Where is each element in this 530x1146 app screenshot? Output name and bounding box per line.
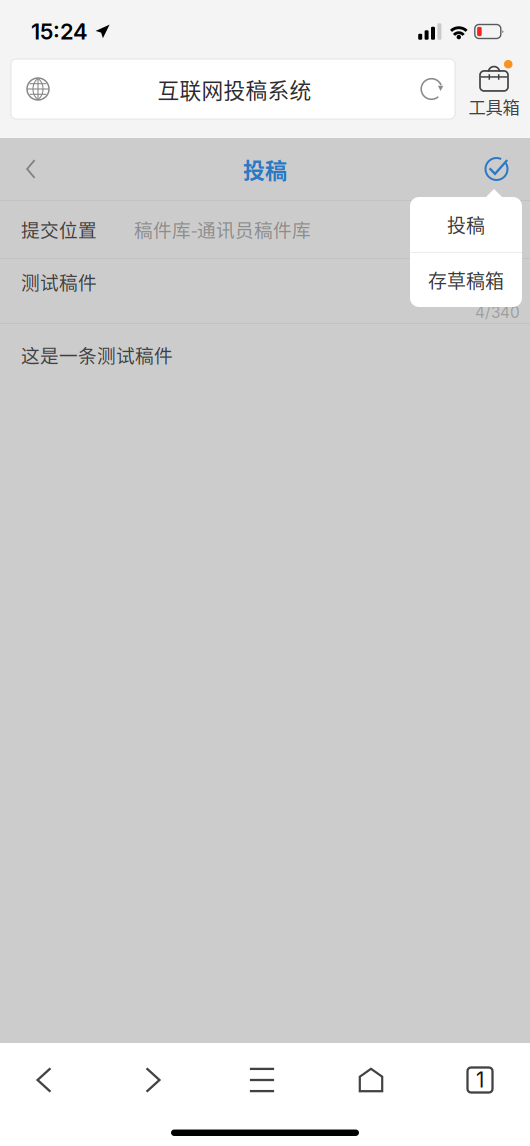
staticText: 投稿 — [243, 153, 287, 185]
staticText: 15:24 — [31, 18, 88, 45]
staticText: 互联网投稿系统 — [157, 73, 311, 105]
button[interactable]: 前进 — [109, 1056, 197, 1104]
staticText: 这是一条测试稿件 — [21, 341, 173, 368]
staticText: 工具箱 — [468, 94, 519, 119]
staticText: 投稿 — [447, 211, 485, 238]
button[interactable]: 工具箱 — [466, 59, 522, 119]
button[interactable]: 菜单 — [218, 1056, 306, 1104]
staticText: 提交位置 — [21, 215, 97, 242]
button[interactable]: 提交位置 — [0, 200, 530, 258]
staticText: 稿件库-通讯员稿件库 — [134, 215, 311, 242]
button[interactable]: 提交 — [469, 141, 525, 197]
button[interactable]: 返回 — [5, 141, 57, 197]
button[interactable]: 互联网投稿系统 — [11, 59, 455, 119]
button[interactable]: 后退 — [0, 1056, 88, 1104]
button[interactable]: 存草稿箱 — [410, 253, 522, 307]
staticText: 存草稿箱 — [428, 266, 504, 294]
staticText: 1 — [476, 1067, 484, 1092]
button[interactable]: 标签页 — [436, 1056, 524, 1104]
button[interactable]: 投稿 — [410, 197, 522, 252]
staticText: 测试稿件 — [21, 268, 97, 295]
staticText: 4/340 — [475, 303, 520, 322]
button[interactable]: 主页 — [327, 1056, 415, 1104]
